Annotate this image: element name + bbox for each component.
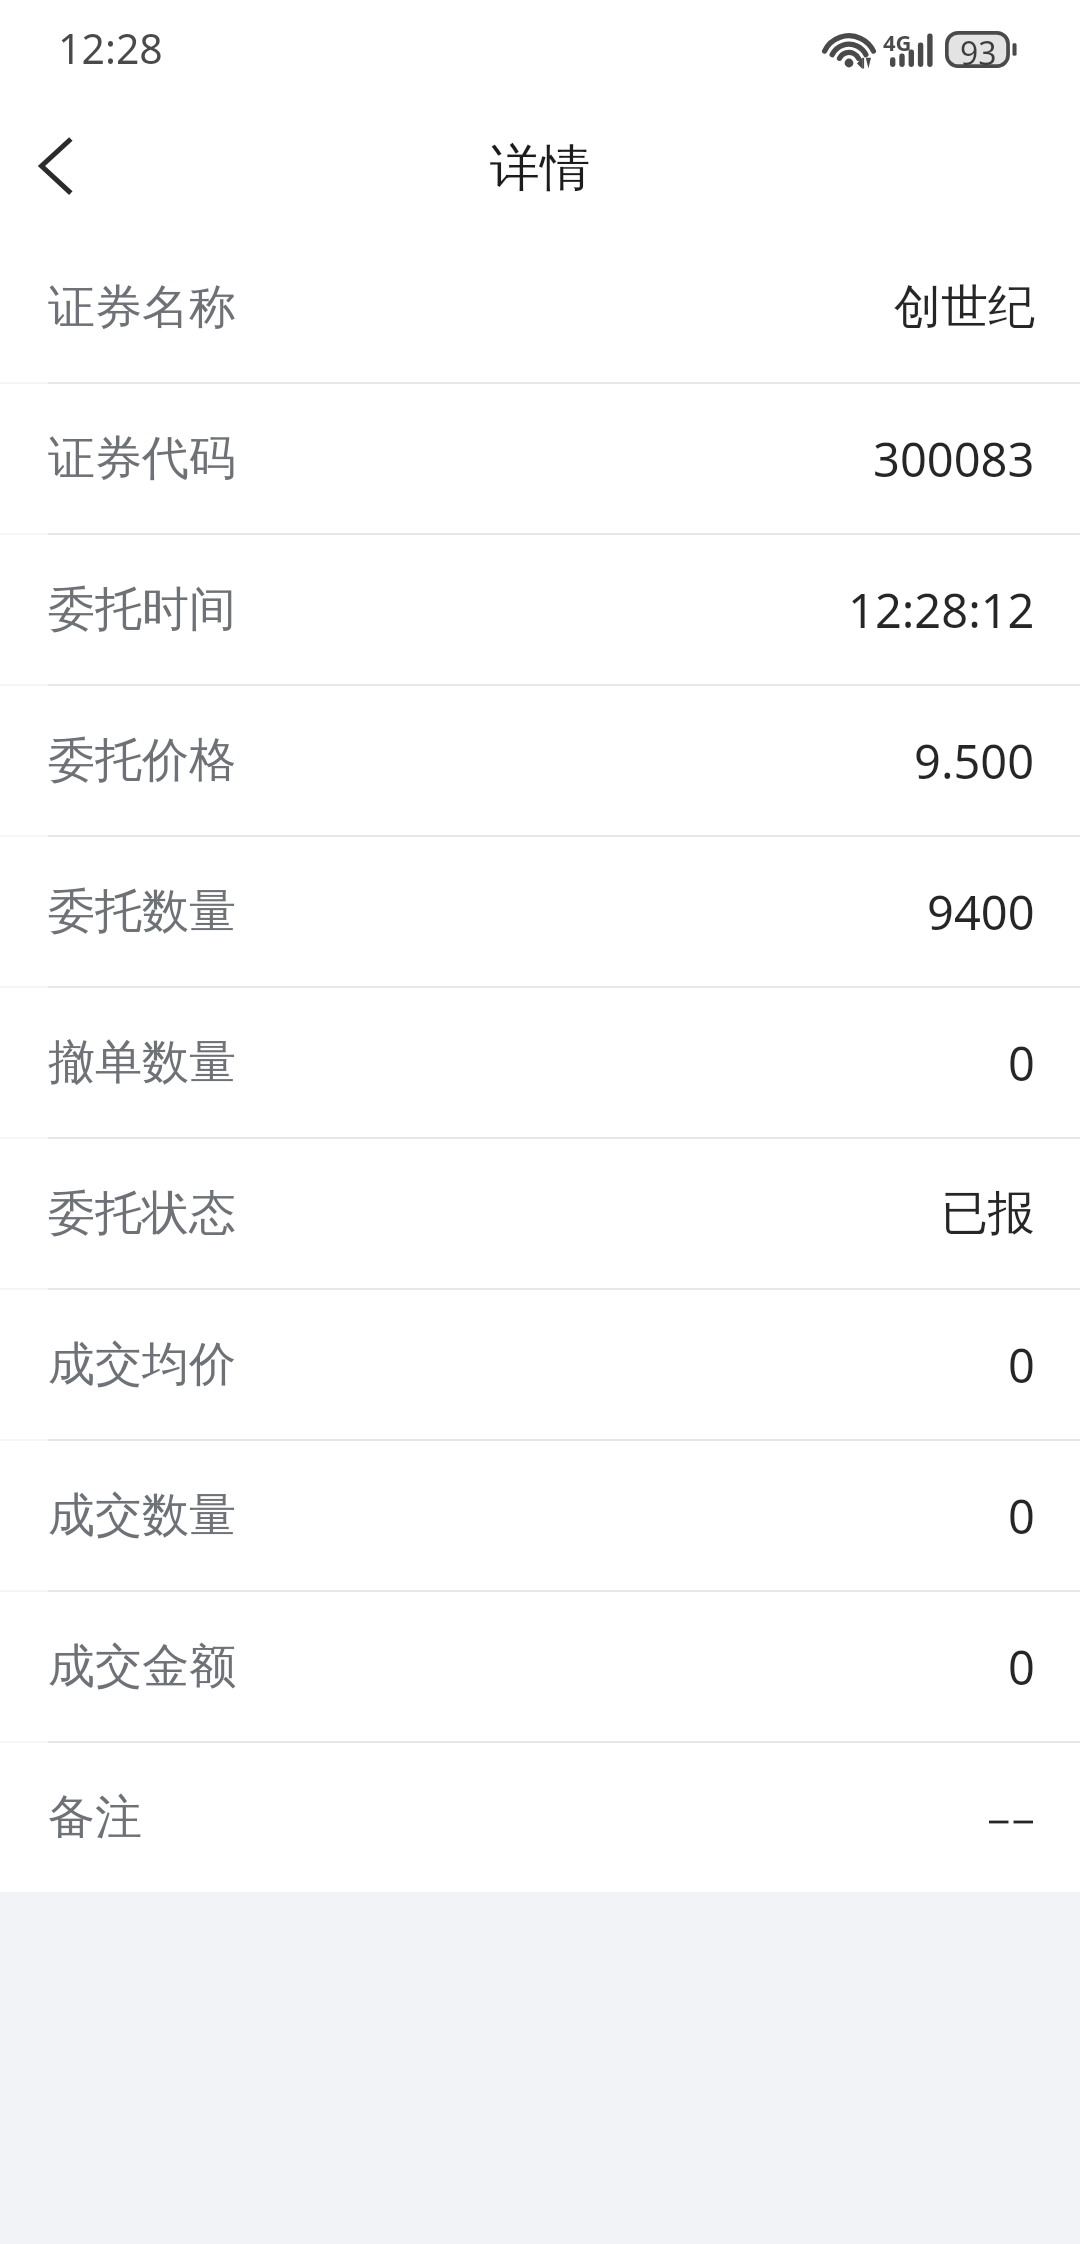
other: Battery 93 percent (945, 31, 1019, 68)
staticText: 成交数量 (48, 1486, 236, 1545)
staticText: 委托价格 (48, 731, 236, 790)
staticText: 成交均价 (48, 1335, 236, 1394)
button[interactable]: 委托价格 (0, 686, 1080, 835)
staticText: 已报 (941, 1184, 1035, 1243)
button[interactable]: 成交数量 (0, 1441, 1080, 1590)
staticText: 撤单数量 (48, 1033, 236, 1092)
button[interactable]: 成交均价 (0, 1290, 1080, 1439)
staticText: 委托数量 (48, 882, 236, 941)
staticText: 委托时间 (48, 580, 236, 639)
staticText: 0 (1008, 1333, 1035, 1397)
staticText: 0 (1008, 1484, 1035, 1548)
staticText: 93 (960, 31, 997, 68)
button[interactable]: 委托数量 (0, 837, 1080, 986)
staticText: 300083 (873, 427, 1035, 491)
staticText: 备注 (48, 1788, 142, 1847)
other: Mobile signal 4G (883, 27, 933, 67)
staticText: 创世纪 (894, 278, 1035, 337)
staticText: 12:28 (58, 20, 163, 76)
staticText: 12:28:12 (848, 578, 1035, 642)
staticText: 证券名称 (48, 278, 236, 337)
staticText: 9400 (927, 880, 1035, 944)
button[interactable]: 委托时间 (0, 535, 1080, 684)
other: Wi-Fi (826, 30, 872, 68)
staticText: 详情 (490, 137, 590, 200)
staticText: 委托状态 (48, 1184, 236, 1243)
button[interactable]: 成交金额 (0, 1592, 1080, 1741)
staticText: 0 (1008, 1031, 1035, 1095)
staticText: 证券代码 (48, 429, 236, 488)
button[interactable]: Back (0, 96, 116, 233)
button[interactable]: 证券代码 (0, 384, 1080, 533)
staticText: 成交金额 (48, 1637, 236, 1696)
staticText: 0 (1008, 1635, 1035, 1699)
button[interactable]: 委托状态 (0, 1139, 1080, 1288)
button[interactable]: 证券名称 (0, 233, 1080, 382)
staticText: 4G (883, 27, 912, 57)
button[interactable]: 备注 (0, 1743, 1080, 1892)
staticText: 9.500 (914, 729, 1035, 793)
button[interactable]: 撤单数量 (0, 988, 1080, 1137)
